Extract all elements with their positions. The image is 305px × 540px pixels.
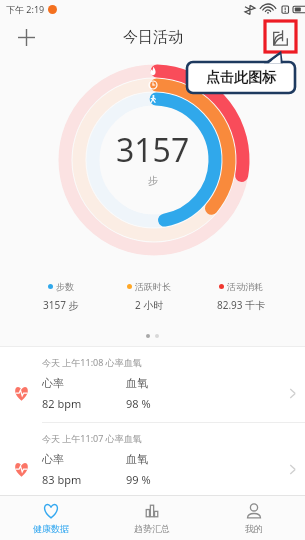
staticText: 82.93 千卡 (217, 298, 266, 312)
staticText: 99 % (126, 472, 151, 487)
staticText: 点击此图标 (206, 69, 276, 87)
staticText: 步 (148, 174, 158, 187)
staticText: 83 bpm (42, 472, 82, 487)
staticText: 活跃时长 (135, 281, 171, 292)
staticText: 活动消耗 (227, 281, 263, 292)
button[interactable]: 趋势汇总 (101, 496, 203, 540)
staticText: 98 % (126, 396, 151, 411)
staticText: 今天 上午11:08 心率血氧 (42, 356, 142, 368)
staticText: 今天 上午11:06 心率血氧 (42, 508, 142, 520)
staticText: 心率 (42, 452, 64, 466)
staticText: 2 小时 (135, 298, 164, 312)
button[interactable]: 健康数据 (0, 496, 101, 540)
button[interactable]: Share (265, 22, 295, 52)
staticText: 今天 上午11:07 心率血氧 (42, 432, 142, 444)
staticText: 趋势汇总 (134, 523, 170, 534)
staticText: 血氧 (126, 376, 148, 390)
staticText: 下午 2:19 (6, 3, 45, 15)
staticText: 心率 (42, 376, 64, 390)
staticText: 3157 步 (43, 298, 79, 312)
staticText: 3157 (116, 128, 190, 172)
button[interactable]: 今天 上午11:07 心率血氧 (0, 423, 305, 498)
button[interactable]: 今天 上午11:08 心率血氧 (0, 347, 305, 422)
staticText: 我的 (245, 523, 263, 534)
button[interactable]: Add (10, 21, 42, 53)
staticText: 82 bpm (42, 396, 82, 411)
staticText: 血氧 (126, 452, 148, 466)
staticText: 健康数据 (33, 523, 69, 534)
button[interactable]: 我的 (203, 496, 305, 540)
staticText: 今日活动 (123, 28, 183, 47)
staticText: 步数 (56, 281, 74, 292)
